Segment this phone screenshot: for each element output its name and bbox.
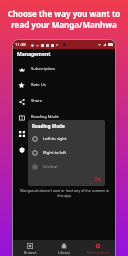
other: Browse [27,243,33,249]
staticText: Left to right [43,136,67,142]
button[interactable]: OK [93,175,102,183]
staticText: Privacy Policy [31,146,57,152]
staticText: Management [17,51,51,58]
staticText: OK [94,176,101,182]
staticText: Browse [24,250,37,255]
staticText: Reading Mode [31,114,59,120]
button[interactable]: Left to right [28,132,105,146]
staticText: Library [58,250,70,255]
button[interactable]: More Apps [13,125,115,141]
button[interactable]: Subscription [13,61,115,77]
other: Library [61,243,67,249]
button[interactable]: Reading Mode [28,120,105,186]
button[interactable]: Share [13,93,115,109]
staticText: Right to left [43,150,66,156]
button[interactable]: Right to left [28,146,105,160]
staticText: this app. [57,193,72,198]
staticText: Reading Mode [32,123,65,129]
staticText: 11:38 [15,42,26,48]
staticText: Share [31,98,42,104]
staticText: Choose the way you want to read your Man… [0,8,128,30]
button[interactable]: Privacy Policy [13,141,115,157]
staticText: Mangasuki doesn't own or host any of the… [20,188,109,193]
button[interactable]: Library [47,240,81,255]
button[interactable]: Management [81,240,115,255]
staticText: Rate Us [31,82,46,88]
button[interactable]: Rate Us [13,77,115,93]
button[interactable]: Vertical [28,160,105,174]
button[interactable]: Reading Mode [13,109,115,125]
staticText: Management [87,250,110,255]
staticText: Subscription [31,66,56,72]
button[interactable]: Browse [13,240,47,255]
other: Management [95,243,101,249]
staticText: Vertical [43,164,58,170]
